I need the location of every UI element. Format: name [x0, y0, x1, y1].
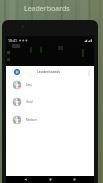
staticText: Leaderboards — [37, 69, 61, 74]
button[interactable]: Leaderboards — [6, 66, 94, 78]
button[interactable]: Home — [45, 176, 56, 183]
button[interactable]: Back — [20, 176, 31, 183]
staticText: Leaderboards — [24, 4, 70, 14]
staticText: Easy — [26, 83, 32, 87]
button[interactable]: Medium — [6, 111, 94, 128]
staticText: 10:41 — [8, 38, 17, 43]
button[interactable]: Easy — [6, 76, 94, 93]
staticText: Hard — [26, 100, 33, 104]
button[interactable]: More options — [84, 68, 93, 77]
staticText: Medium — [26, 118, 37, 122]
button[interactable]: Recent apps — [69, 176, 80, 183]
button[interactable]: Hard — [6, 93, 94, 110]
